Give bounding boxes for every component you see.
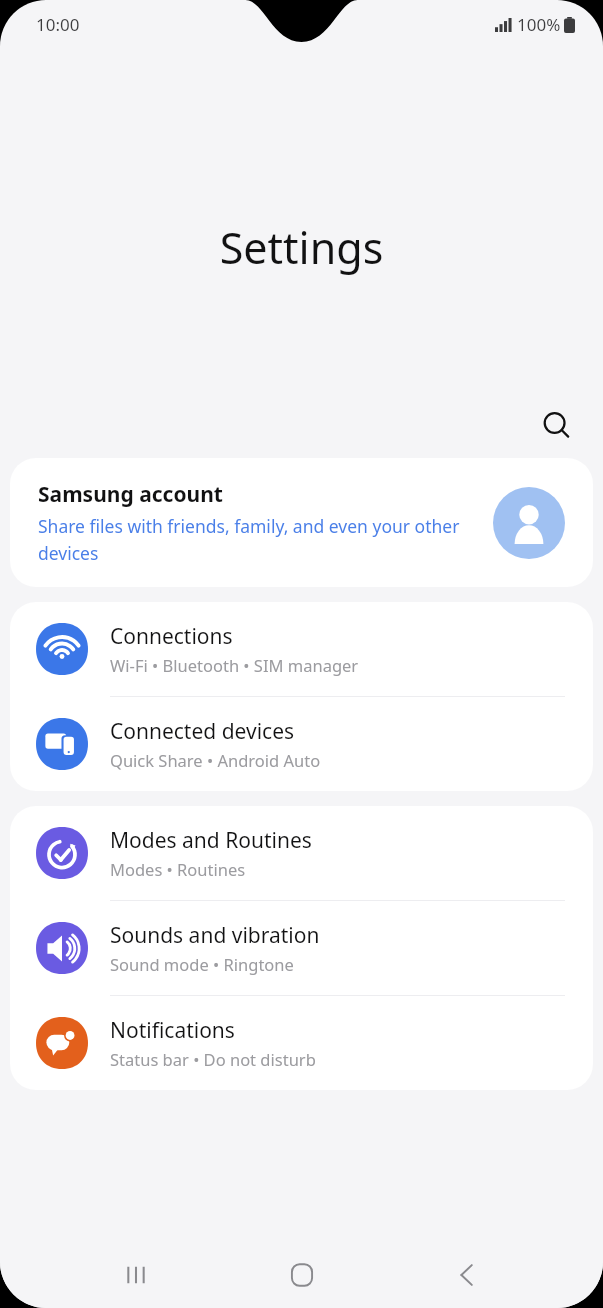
- button[interactable]: Connected devices: [10, 697, 593, 791]
- button[interactable]: Sounds and vibration: [10, 901, 593, 995]
- button[interactable]: Samsung account: [10, 458, 593, 587]
- staticText: 100%: [517, 13, 561, 36]
- staticText: Status bar • Do not disturb: [110, 1048, 316, 1070]
- staticText: Quick Share • Android Auto: [110, 749, 321, 771]
- button[interactable]: Home: [272, 1245, 332, 1305]
- staticText: Sounds and vibration: [110, 921, 320, 950]
- staticText: 10:00: [36, 13, 80, 36]
- staticText: Notifications: [110, 1016, 235, 1045]
- staticText: Modes • Routines: [110, 858, 246, 880]
- button[interactable]: Recents: [106, 1245, 166, 1305]
- staticText: Share files with friends, family, and ev…: [38, 514, 481, 565]
- button[interactable]: Notifications: [10, 996, 593, 1090]
- staticText: Samsung account: [38, 480, 223, 509]
- staticText: Modes and Routines: [110, 826, 312, 855]
- button[interactable]: Back: [437, 1245, 497, 1305]
- button[interactable]: Connections: [10, 602, 593, 696]
- button[interactable]: Search: [533, 402, 581, 450]
- staticText: Settings: [0, 218, 603, 277]
- staticText: Connected devices: [110, 717, 295, 746]
- staticText: Connections: [110, 622, 233, 651]
- button[interactable]: Modes and Routines: [10, 806, 593, 900]
- staticText: Sound mode • Ringtone: [110, 953, 294, 975]
- staticText: Wi-Fi • Bluetooth • SIM manager: [110, 654, 359, 676]
